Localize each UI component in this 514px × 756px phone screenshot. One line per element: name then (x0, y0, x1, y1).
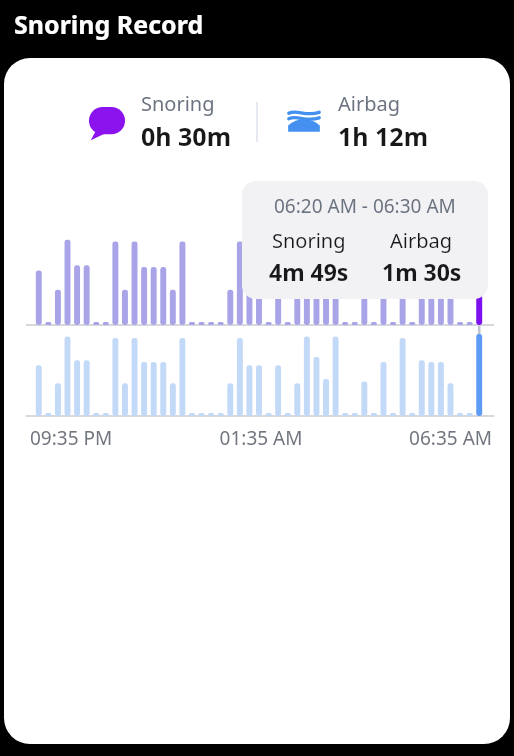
staticText: 1h 12m (338, 119, 429, 153)
staticText: 09:35 PM (30, 425, 184, 451)
staticText: Airbag (390, 227, 453, 254)
other: Airbag (282, 100, 326, 144)
staticText: 06:20 AM - 06:30 AM (274, 193, 456, 219)
staticText: Airbag (338, 90, 401, 117)
staticText: 01:35 AM (184, 425, 338, 451)
staticText: Snoring (272, 227, 346, 254)
button[interactable]: Airbag (278, 90, 433, 153)
staticText: 0h 30m (141, 119, 232, 153)
button[interactable]: Snoring (81, 90, 236, 153)
staticText: 1m 30s (382, 256, 462, 287)
staticText: 06:35 AM (338, 425, 492, 451)
other: Snoring (85, 100, 129, 144)
staticText: Snoring (141, 90, 215, 117)
staticText: Snoring Record (14, 7, 204, 41)
staticText: 4m 49s (269, 256, 349, 287)
button[interactable]: 06:20 AM - 06:30 AM (242, 181, 488, 299)
